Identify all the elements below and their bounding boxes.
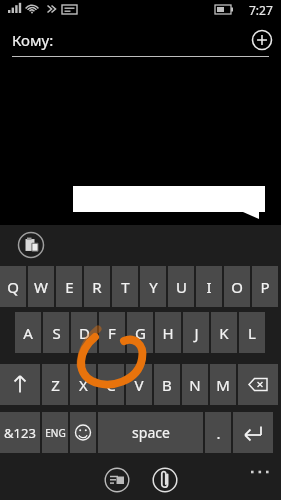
staticText: W bbox=[34, 277, 48, 297]
button[interactable]: I bbox=[196, 266, 222, 307]
staticText: A bbox=[23, 323, 33, 343]
button[interactable]: B bbox=[154, 364, 180, 405]
button[interactable]: L bbox=[239, 312, 265, 353]
button[interactable]: K bbox=[211, 312, 237, 353]
button[interactable]: O bbox=[224, 266, 250, 307]
staticText: space bbox=[132, 423, 170, 442]
button[interactable]: Send message bbox=[104, 467, 130, 493]
button[interactable]: &123 bbox=[0, 412, 40, 453]
staticText: I bbox=[206, 277, 212, 297]
button[interactable]: G bbox=[127, 312, 153, 353]
staticText: ENG bbox=[45, 426, 66, 440]
button[interactable]: Y bbox=[140, 266, 166, 307]
staticText: 7:27 bbox=[249, 2, 273, 18]
button[interactable]: U bbox=[168, 266, 194, 307]
button[interactable]: C bbox=[98, 364, 124, 405]
button[interactable]: A bbox=[15, 312, 41, 353]
staticText: . bbox=[216, 423, 221, 443]
staticText: V bbox=[134, 375, 144, 395]
staticText: B bbox=[162, 375, 172, 395]
staticText: F bbox=[108, 323, 116, 343]
staticText: R bbox=[92, 277, 102, 297]
button[interactable]: Key bbox=[0, 364, 40, 405]
button[interactable]: More options bbox=[247, 464, 275, 480]
staticText: T bbox=[121, 277, 130, 297]
button[interactable]: P bbox=[252, 266, 278, 307]
staticText: O bbox=[231, 277, 243, 297]
staticText: K bbox=[219, 323, 229, 343]
staticText: J bbox=[194, 323, 199, 343]
staticText: &123 bbox=[4, 424, 36, 442]
staticText: L bbox=[248, 323, 256, 343]
button[interactable]: ENG bbox=[42, 412, 68, 453]
button[interactable]: Key bbox=[70, 412, 96, 453]
staticText: M bbox=[216, 375, 230, 395]
staticText: D bbox=[79, 323, 90, 343]
button[interactable]: M bbox=[210, 364, 236, 405]
button[interactable]: W bbox=[28, 266, 54, 307]
button[interactable]: Add recipient bbox=[251, 29, 273, 51]
button[interactable]: S bbox=[43, 312, 69, 353]
staticText: S bbox=[52, 323, 61, 343]
button[interactable]: R bbox=[84, 266, 110, 307]
staticText: U bbox=[176, 277, 187, 297]
button[interactable]: Attach bbox=[152, 467, 178, 493]
staticText: G bbox=[135, 323, 146, 343]
button[interactable]: D bbox=[71, 312, 97, 353]
button[interactable]: T bbox=[112, 266, 138, 307]
button[interactable]: X bbox=[70, 364, 96, 405]
staticText: H bbox=[162, 323, 174, 343]
staticText: E bbox=[65, 277, 74, 297]
button[interactable] bbox=[73, 186, 265, 219]
button[interactable]: Clipboard bbox=[17, 231, 45, 259]
button[interactable]: F bbox=[99, 312, 125, 353]
button[interactable]: Кому: bbox=[0, 24, 281, 56]
button[interactable]: V bbox=[126, 364, 152, 405]
button[interactable]: space bbox=[98, 412, 203, 453]
button[interactable]: Key bbox=[233, 412, 273, 453]
staticText: Z bbox=[51, 375, 60, 395]
button[interactable]: Q bbox=[0, 266, 26, 307]
button[interactable]: . bbox=[205, 412, 231, 453]
staticText: Y bbox=[149, 277, 158, 297]
staticText: Кому: bbox=[12, 30, 54, 50]
staticText: C bbox=[106, 375, 116, 395]
button[interactable]: N bbox=[182, 364, 208, 405]
button[interactable]: Key bbox=[238, 364, 278, 405]
staticText: X bbox=[79, 375, 88, 395]
button[interactable]: E bbox=[56, 266, 82, 307]
staticText: Q bbox=[7, 277, 19, 297]
staticText: N bbox=[189, 375, 201, 395]
button[interactable]: Z bbox=[42, 364, 68, 405]
staticText: P bbox=[260, 277, 270, 297]
button[interactable]: H bbox=[155, 312, 181, 353]
button[interactable]: J bbox=[183, 312, 209, 353]
